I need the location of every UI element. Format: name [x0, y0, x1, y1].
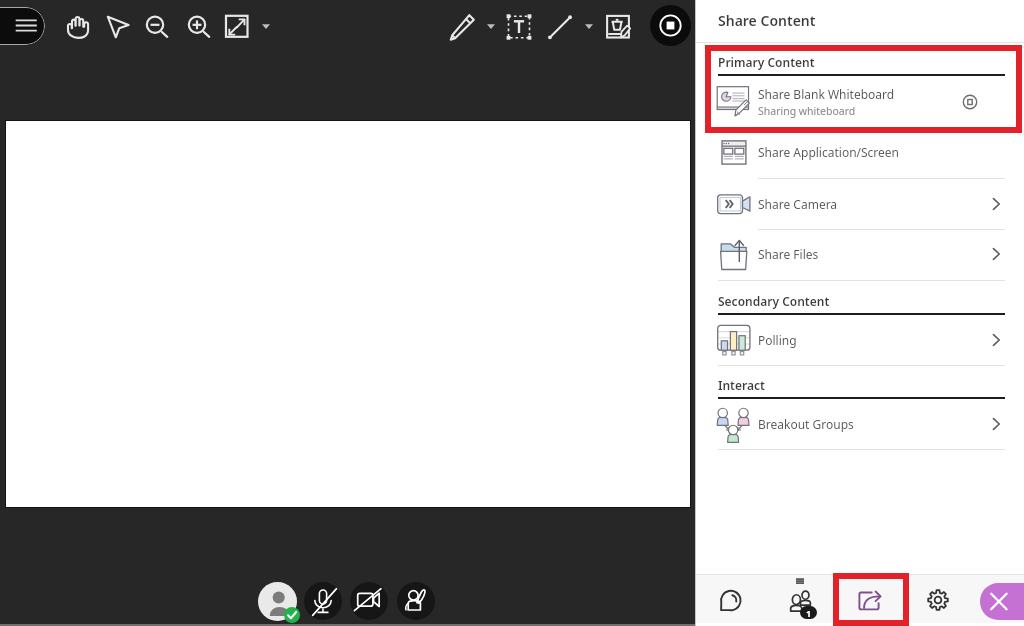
staticText: Share Camera — [758, 196, 838, 212]
staticText: Share Content — [718, 11, 816, 30]
button[interactable]: Share Blank Whiteboard — [714, 79, 1006, 125]
button[interactable]: Pen tool — [447, 12, 477, 42]
staticText: Interact — [718, 377, 765, 393]
button[interactable]: Fit to screen — [222, 12, 252, 42]
staticText: Share Files — [758, 246, 819, 262]
button[interactable]: Unmute — [304, 582, 342, 620]
button[interactable]: Share Camera — [714, 181, 1006, 227]
button[interactable]: Participants — [784, 585, 816, 617]
button[interactable]: More options — [582, 19, 596, 33]
button[interactable]: More options — [259, 19, 273, 33]
staticText: Sharing whiteboard — [758, 104, 856, 118]
button[interactable]: Pan tool — [64, 12, 94, 42]
button[interactable]: Line tool — [545, 12, 575, 42]
staticText: Secondary Content — [718, 293, 830, 309]
button[interactable]: Text box tool — [504, 12, 534, 42]
staticText: 1 — [806, 607, 812, 619]
button[interactable]: Share Application/Screen — [714, 129, 1006, 175]
button[interactable]: More options — [484, 19, 498, 33]
button[interactable]: Share content — [853, 585, 885, 617]
button[interactable]: Zoom out — [140, 12, 170, 42]
button[interactable]: Start video — [350, 582, 388, 620]
button[interactable]: Breakout Groups — [714, 401, 1006, 447]
staticText: Breakout Groups — [758, 416, 854, 432]
staticText: Share Blank Whiteboard — [758, 86, 895, 102]
button[interactable]: Clear page — [603, 12, 633, 42]
button[interactable]: Select tool — [103, 12, 133, 42]
button[interactable]: Polling — [714, 317, 1006, 363]
button[interactable]: Chat — [715, 585, 747, 617]
button[interactable]: Participant — [258, 582, 297, 621]
staticText: Primary Content — [718, 54, 815, 70]
button[interactable]: Close panel — [980, 583, 1024, 620]
staticText: Share Application/Screen — [758, 144, 900, 160]
button[interactable]: Menu — [0, 7, 45, 45]
staticText: Polling — [758, 332, 797, 348]
button[interactable]: Settings — [922, 584, 954, 616]
button[interactable]: Stop sharing — [650, 5, 691, 46]
button[interactable]: Raise hand — [397, 582, 435, 620]
button[interactable]: Zoom in — [182, 12, 212, 42]
button[interactable]: Share Files — [714, 231, 1006, 277]
